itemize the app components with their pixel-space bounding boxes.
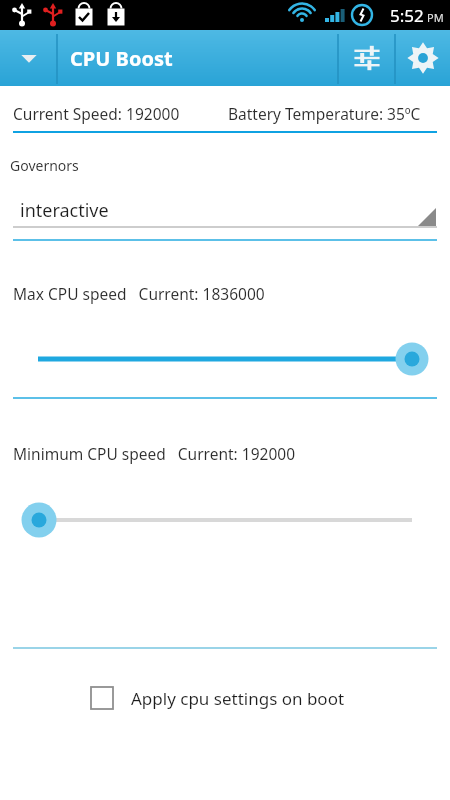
staticText: Max CPU speed Current: 1836000 <box>13 283 265 304</box>
button[interactable]: Minimum CPU speed slider <box>0 499 450 541</box>
button[interactable]: Tune <box>338 30 395 86</box>
button[interactable]: Max CPU speed slider <box>0 338 450 380</box>
button[interactable]: Navigate up <box>0 30 57 86</box>
staticText: PM <box>427 10 444 25</box>
staticText: 5:52 <box>390 4 424 27</box>
button[interactable]: Apply cpu settings on boot <box>85 678 345 718</box>
staticText: Governors <box>10 156 79 175</box>
staticText: Battery Temperature: 35ºC <box>228 103 421 124</box>
staticText: Minimum CPU speed Current: 192000 <box>13 443 295 464</box>
staticText: CPU Boost <box>70 45 173 72</box>
staticText: interactive <box>20 198 109 223</box>
button[interactable]: interactive <box>13 190 437 230</box>
button[interactable]: Settings <box>395 30 450 86</box>
staticText: Current Speed: 192000 <box>13 103 180 124</box>
staticText: Apply cpu settings on boot <box>131 687 345 710</box>
